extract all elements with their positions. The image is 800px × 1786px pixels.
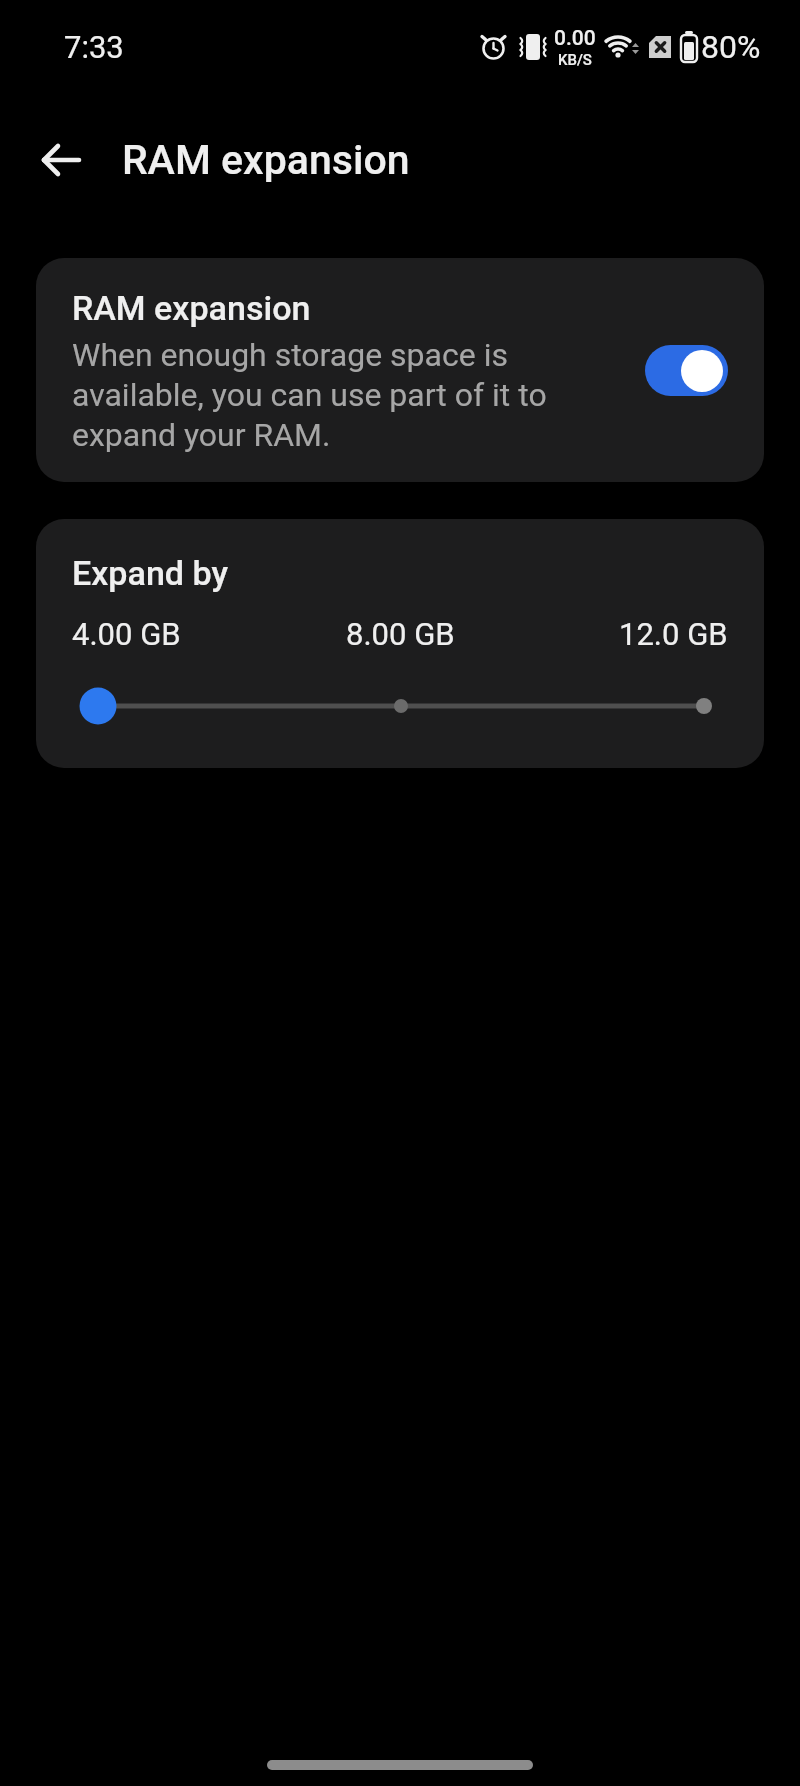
staticText: KB/S [558, 51, 592, 68]
staticText: When enough storage space is available, … [72, 336, 547, 453]
button[interactable] [38, 136, 86, 184]
staticText: 4.00 GB [72, 616, 181, 652]
button[interactable] [36, 682, 764, 730]
staticText: 8.00 GB [346, 616, 455, 652]
staticText: 0.00 [554, 26, 596, 51]
staticText: 80% [701, 28, 761, 66]
staticText: Expand by [72, 553, 228, 593]
staticText: RAM expansion [72, 288, 311, 328]
button[interactable] [645, 345, 728, 396]
staticText: 7:33 [64, 29, 124, 65]
staticText: 12.0 GB [619, 616, 728, 652]
button[interactable]: RAM expansion [36, 258, 764, 482]
staticText: RAM expansion [122, 136, 410, 184]
